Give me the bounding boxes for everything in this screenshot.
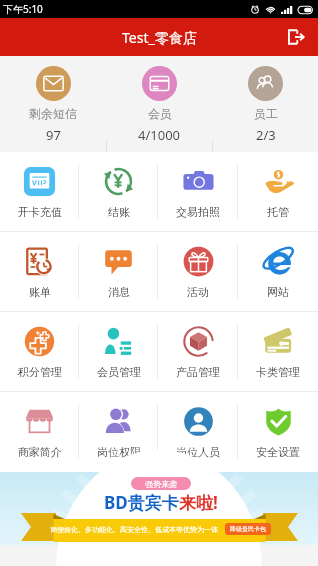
staticText: 结账	[108, 205, 130, 219]
staticText: 商家简介	[18, 445, 62, 459]
button[interactable]: 岗位权限	[79, 392, 158, 471]
staticText: 交易拍照	[176, 205, 220, 219]
staticText: 岗位权限	[97, 445, 141, 459]
staticText: 卡类管理	[256, 365, 300, 379]
staticText: 员工	[254, 106, 278, 121]
button[interactable]: 岗位人员	[158, 392, 238, 471]
button[interactable]: 消息	[79, 232, 158, 311]
staticText: 托管	[267, 205, 289, 219]
button[interactable]: 强势来袭	[0, 472, 318, 545]
staticText: 降级贵民卡包	[230, 525, 266, 533]
button[interactable]: 交易拍照	[158, 152, 238, 231]
staticText: 剩余短信	[29, 106, 77, 121]
staticText: 强势来袭	[145, 479, 177, 489]
button[interactable]: 账单	[0, 232, 79, 311]
staticText: 下午5:10	[3, 2, 43, 16]
button[interactable]: 剩余短信	[0, 56, 106, 152]
button[interactable]: 托管	[238, 152, 318, 231]
staticText: 开卡充值	[18, 205, 62, 219]
staticText: 岗位人员	[176, 445, 220, 459]
button[interactable]: 商家简介	[0, 392, 79, 471]
staticText: 消息	[108, 285, 130, 299]
staticText: Test_零食店	[122, 28, 197, 47]
button[interactable]: 网站	[238, 232, 318, 311]
button[interactable]: 积分管理	[0, 312, 79, 391]
button[interactable]: 会员	[107, 56, 212, 152]
staticText: 安全设置	[256, 445, 300, 459]
staticText: 会员管理	[97, 365, 141, 379]
button[interactable]: 开卡充值	[0, 152, 79, 231]
button[interactable]: 活动	[158, 232, 238, 311]
staticText: 活动	[187, 285, 209, 299]
staticText: 97	[46, 126, 61, 144]
staticText: 2/3	[256, 126, 276, 144]
staticText: 来啦!	[179, 491, 218, 514]
staticText: 4/1000	[138, 126, 181, 144]
staticText: 积分管理	[18, 365, 62, 379]
button[interactable]: 员工	[213, 56, 318, 152]
button[interactable]: 会员管理	[79, 312, 158, 391]
staticText: 会员	[148, 106, 172, 121]
button[interactable]: 结账	[79, 152, 158, 231]
staticText: 簡便操化、多功能化、高安全性、低成本等优势为一体	[50, 525, 218, 534]
button[interactable]: 安全设置	[238, 392, 318, 471]
button[interactable]: Logout	[282, 23, 310, 51]
staticText: 产品管理	[176, 365, 220, 379]
staticText: BD贵宾卡	[104, 491, 179, 514]
button[interactable]: 产品管理	[158, 312, 238, 391]
staticText: 账单	[29, 285, 51, 299]
staticText: 网站	[267, 285, 289, 299]
button[interactable]: 卡类管理	[238, 312, 318, 391]
